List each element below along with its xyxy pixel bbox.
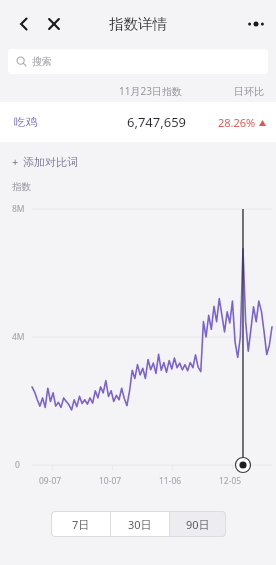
button[interactable]: 90日 xyxy=(170,512,225,536)
staticText: 12-05 xyxy=(219,475,242,487)
staticText: + xyxy=(12,154,19,169)
button[interactable]: Back xyxy=(8,8,40,40)
button[interactable]: + xyxy=(10,150,80,173)
staticText: 0 xyxy=(15,459,20,471)
button[interactable]: 吃鸡 xyxy=(0,102,276,142)
staticText: 日环比 xyxy=(234,85,264,98)
staticText: 指数详情 xyxy=(109,15,167,33)
staticText: 6,747,659 xyxy=(127,113,187,131)
staticText: 28.26% xyxy=(218,115,256,130)
staticText: 吃鸡 xyxy=(14,115,37,129)
staticText: 10-07 xyxy=(99,475,122,487)
staticText: 30日 xyxy=(128,517,152,532)
staticText: 指数 xyxy=(12,181,31,193)
staticText: 7日 xyxy=(72,517,90,532)
staticText: 11月23日指数 xyxy=(119,84,182,98)
staticText: 搜索 xyxy=(32,55,52,68)
button[interactable]: 搜索 xyxy=(8,49,268,74)
staticText: 添加对比词 xyxy=(23,155,78,169)
button[interactable]: 7日 xyxy=(52,512,110,536)
staticText: 90日 xyxy=(186,517,210,532)
staticText: 4M xyxy=(12,331,25,343)
staticText: 11-06 xyxy=(159,475,182,487)
button[interactable]: 30日 xyxy=(111,512,169,536)
staticText: 8M xyxy=(12,203,25,215)
button[interactable]: Close xyxy=(38,8,70,40)
staticText: 09-07 xyxy=(39,475,62,487)
button[interactable]: More options xyxy=(240,8,272,40)
